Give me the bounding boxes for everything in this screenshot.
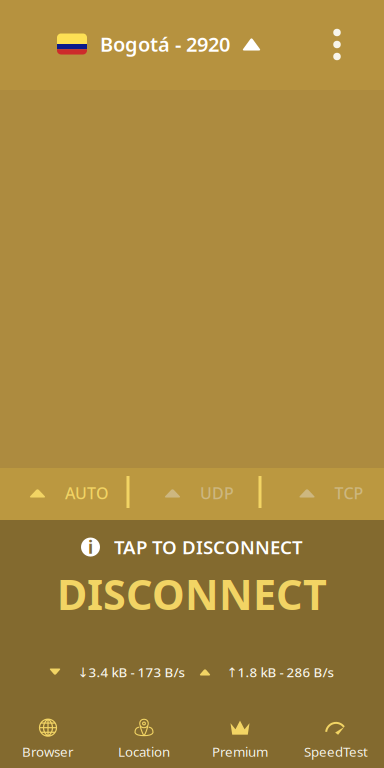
button[interactable]: i (0, 535, 384, 621)
staticText: ↑1.8 kB - 286 B/s (226, 663, 333, 681)
staticText: Bogotá - 2920 (100, 31, 230, 57)
staticText: TCP (334, 482, 363, 504)
button[interactable]: More options (314, 16, 360, 72)
staticText: AUTO (65, 482, 109, 504)
button[interactable]: SpeedTest (288, 711, 384, 767)
staticText: SpeedTest (304, 743, 368, 760)
staticText: UDP (200, 482, 234, 504)
staticText: TAP TO DISCONNECT (114, 535, 303, 559)
button[interactable]: Browser (0, 711, 96, 767)
button[interactable]: AUTO (13, 467, 125, 519)
staticText: Browser (22, 743, 74, 760)
staticText: Premium (212, 743, 268, 760)
staticText: Location (118, 743, 170, 760)
staticText: ↓3.4 kB - 173 B/s (77, 663, 184, 681)
button[interactable]: UDP (143, 467, 255, 519)
button[interactable]: Bogotá - 2920 (57, 16, 261, 72)
button[interactable]: Location (96, 711, 192, 767)
staticText: DISCONNECT (57, 566, 327, 621)
button[interactable]: Premium (192, 711, 288, 767)
button[interactable]: TCP (275, 467, 384, 519)
staticText: i (88, 535, 93, 558)
